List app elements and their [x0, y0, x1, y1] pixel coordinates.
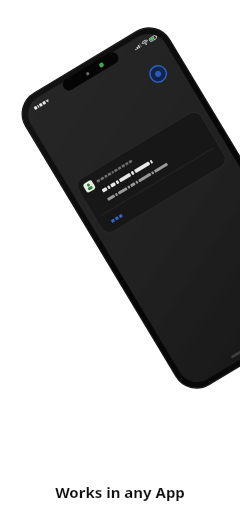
button[interactable]: Phone showing Neck Check notification [0, 0, 240, 520]
staticText: Works in any App [55, 482, 185, 502]
button[interactable]: Works in any App [0, 464, 240, 520]
